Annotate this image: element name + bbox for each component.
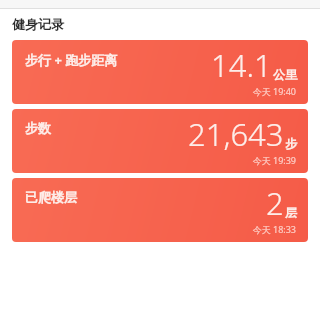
button[interactable]: 步行 + 跑步距离 [12, 40, 308, 104]
staticText: 今天 19:39 [252, 154, 296, 166]
staticText: 步行 + 跑步距离 [25, 51, 118, 69]
staticText: 2 [266, 182, 284, 224]
staticText: 今天 18:33 [252, 223, 296, 235]
button[interactable]: 步数 [12, 109, 308, 173]
staticText: 步 [285, 136, 297, 151]
staticText: 21,643 [188, 113, 284, 155]
staticText: 已爬楼层 [25, 189, 77, 205]
button[interactable]: 已爬楼层 [12, 178, 308, 242]
staticText: 层 [285, 205, 297, 220]
staticText: 今天 19:40 [252, 85, 296, 97]
staticText: 14.1 [211, 44, 272, 86]
staticText: 步数 [25, 120, 51, 136]
staticText: 公里 [273, 67, 297, 82]
staticText: 健身记录 [12, 16, 64, 32]
